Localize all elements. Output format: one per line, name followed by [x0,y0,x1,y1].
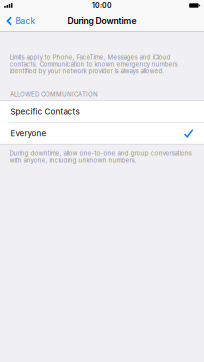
staticText: 10:00 [92,1,112,10]
staticText: ALLOWED COMMUNICATION [10,91,98,98]
button[interactable]: Everyone [0,123,204,144]
staticText: Limits apply to Phone, FaceTime, Message… [10,54,178,74]
button[interactable]: Specific Contacts [0,101,204,122]
staticText: Back [15,16,35,26]
staticText: During Downtime [67,16,136,26]
staticText: During downtime, allow one-to-one and gr… [10,150,192,164]
staticText: Specific Contacts [10,107,79,116]
button[interactable]: Back [0,11,41,31]
staticText: Everyone [10,128,46,138]
